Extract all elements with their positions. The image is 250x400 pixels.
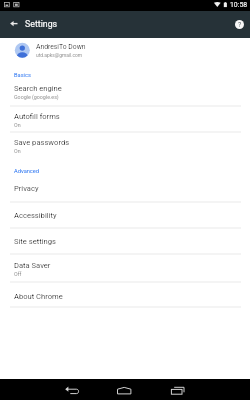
staticText: Privacy bbox=[14, 184, 39, 193]
staticText: Off bbox=[14, 271, 22, 277]
staticText: utd.apks@gmail.com bbox=[36, 52, 83, 58]
staticText: On bbox=[14, 122, 21, 128]
button[interactable] bbox=[0, 202, 250, 226]
button[interactable]: Back bbox=[54, 379, 90, 400]
staticText: Site settings bbox=[14, 237, 56, 246]
button[interactable]: Home bbox=[106, 379, 142, 400]
staticText: Search engine bbox=[14, 84, 62, 93]
button[interactable] bbox=[0, 106, 250, 131]
staticText: Accessibility bbox=[14, 211, 57, 220]
staticText: Settings bbox=[25, 19, 58, 29]
staticText: Data Saver bbox=[14, 261, 51, 270]
button[interactable] bbox=[0, 254, 250, 280]
staticText: 10:58 bbox=[230, 1, 248, 9]
staticText: Basics bbox=[14, 72, 31, 79]
button[interactable] bbox=[0, 38, 250, 62]
staticText: Autofill forms bbox=[14, 112, 60, 121]
button[interactable] bbox=[0, 228, 250, 252]
staticText: Google (google.es) bbox=[14, 94, 59, 100]
staticText: ? bbox=[238, 21, 242, 29]
button[interactable] bbox=[0, 79, 250, 105]
button[interactable]: Navigate up bbox=[0, 11, 24, 38]
staticText: On bbox=[14, 148, 21, 154]
staticText: Save passwords bbox=[14, 138, 70, 147]
staticText: About Chrome bbox=[14, 292, 63, 301]
staticText: AndresiTo Down bbox=[36, 43, 86, 51]
button[interactable]: Recent apps bbox=[160, 379, 196, 400]
staticText: Advanced bbox=[14, 168, 40, 175]
button[interactable] bbox=[0, 282, 250, 305]
button[interactable] bbox=[0, 133, 250, 158]
button[interactable]: Help bbox=[228, 11, 250, 38]
button[interactable] bbox=[0, 176, 250, 201]
